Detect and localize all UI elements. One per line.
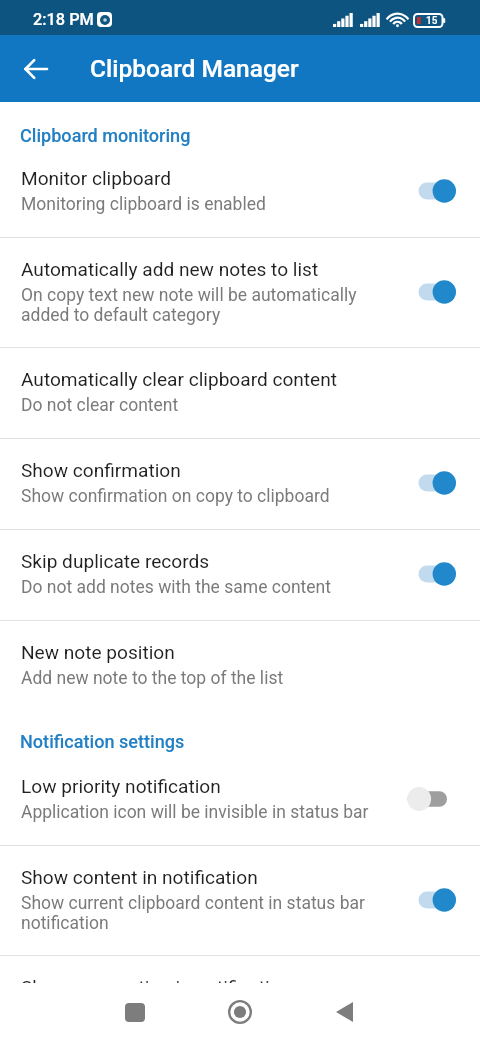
staticText: On copy text new note will be automatica… bbox=[21, 285, 388, 325]
button[interactable]: Show copy action in notification bbox=[0, 956, 480, 1040]
button[interactable] bbox=[412, 275, 456, 309]
button[interactable] bbox=[412, 782, 456, 816]
button[interactable]: Skip duplicate records bbox=[0, 530, 480, 620]
button[interactable]: Monitor clipboard bbox=[0, 151, 480, 237]
staticText: Show current clipboard content in status… bbox=[21, 893, 388, 933]
button[interactable]: Back bbox=[320, 988, 368, 1036]
staticText: Monitoring clipboard is enabled bbox=[21, 194, 266, 215]
button[interactable] bbox=[412, 557, 456, 591]
staticText: Do not add notes with the same content bbox=[21, 577, 331, 598]
button[interactable]: Automatically add new notes to list bbox=[0, 238, 480, 347]
staticText: Notification settings bbox=[20, 731, 480, 752]
staticText: Clipboard Manager bbox=[90, 54, 299, 83]
staticText: Some description here bbox=[21, 1003, 196, 1018]
staticText: Automatically add new notes to list bbox=[21, 258, 319, 280]
staticText: Clipboard monitoring bbox=[20, 125, 480, 146]
button[interactable]: Recent apps bbox=[111, 988, 159, 1036]
button[interactable]: Low priority notification bbox=[0, 759, 480, 845]
button[interactable]: Show content in notification bbox=[0, 846, 480, 955]
staticText: Automatically clear clipboard content bbox=[21, 368, 338, 390]
staticText: Show content in notification bbox=[21, 866, 258, 888]
staticText: Skip duplicate records bbox=[21, 550, 210, 572]
button[interactable]: Automatically clear clipboard content bbox=[0, 348, 480, 438]
button[interactable] bbox=[412, 174, 456, 208]
button[interactable] bbox=[412, 883, 456, 917]
button[interactable]: Back bbox=[16, 49, 56, 89]
staticText: Show confirmation on copy to clipboard bbox=[21, 486, 330, 507]
staticText: Monitor clipboard bbox=[21, 167, 171, 189]
button[interactable]: Show confirmation bbox=[0, 439, 480, 529]
staticText: Do not clear content bbox=[21, 395, 179, 416]
staticText: Show confirmation bbox=[21, 459, 181, 481]
staticText: New note position bbox=[21, 641, 175, 663]
button[interactable]: New note position bbox=[0, 621, 480, 710]
staticText: Application icon will be invisible in st… bbox=[21, 802, 369, 823]
button[interactable]: Home bbox=[216, 988, 264, 1036]
staticText: 15 bbox=[426, 15, 438, 27]
staticText: Add new note to the top of the list bbox=[21, 668, 284, 689]
staticText: Low priority notification bbox=[21, 775, 221, 797]
staticText: 2:18 PM bbox=[33, 10, 94, 29]
staticText: Show copy action in notification bbox=[21, 976, 292, 998]
button[interactable] bbox=[412, 466, 456, 500]
